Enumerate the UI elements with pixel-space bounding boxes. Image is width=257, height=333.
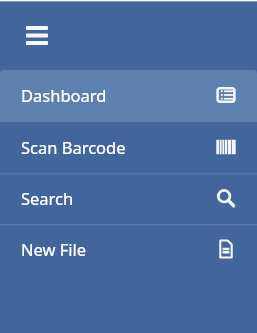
button[interactable]: Scan Barcode: [0, 122, 257, 173]
staticText: Scan Barcode: [21, 136, 126, 158]
staticText: New File: [21, 238, 87, 260]
staticText: Search: [21, 187, 74, 209]
button[interactable]: New File: [0, 225, 257, 275]
button[interactable]: Open navigation menu: [15, 15, 59, 56]
button[interactable]: Search: [0, 174, 257, 224]
button[interactable]: Dashboard: [0, 70, 257, 122]
staticText: Dashboard: [21, 84, 107, 106]
